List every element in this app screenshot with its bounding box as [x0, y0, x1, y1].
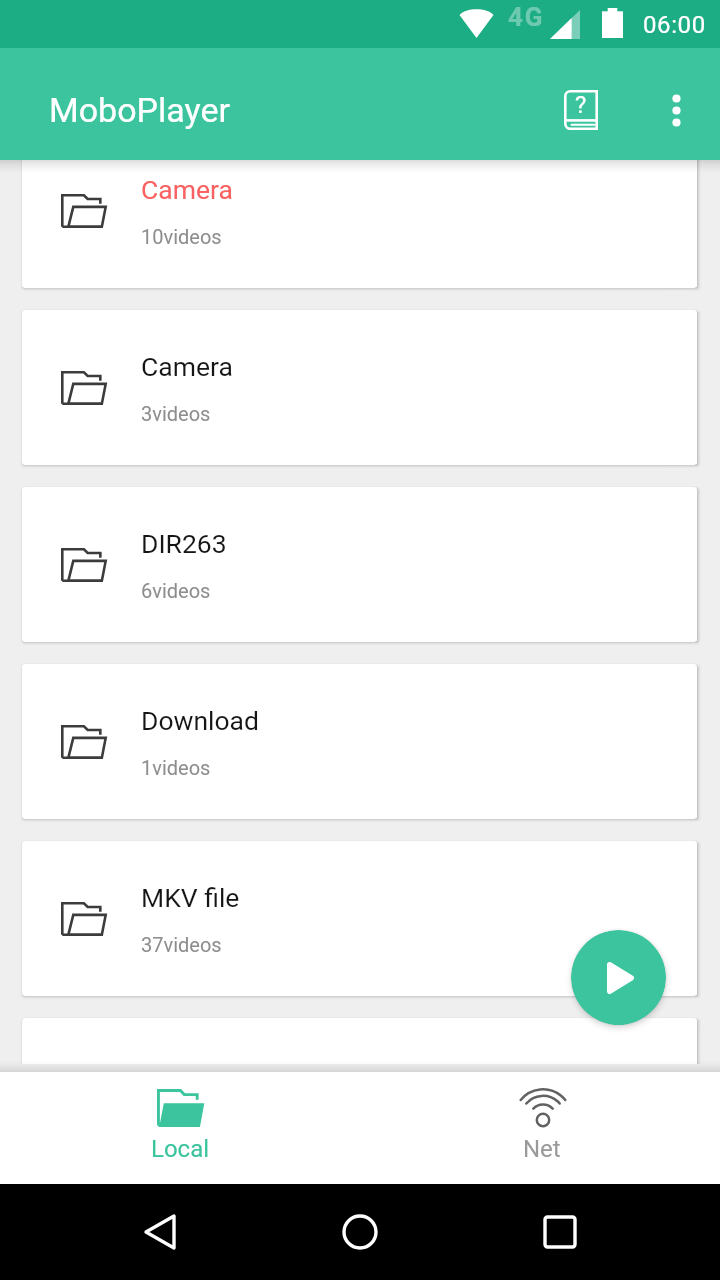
- button[interactable]: Home: [312, 1184, 408, 1280]
- button[interactable]: Camera: [22, 160, 697, 288]
- button[interactable]: DIR263: [22, 487, 697, 642]
- button[interactable]: Net: [452, 1072, 632, 1184]
- staticText: 4G: [508, 2, 545, 32]
- button[interactable]: Local: [90, 1072, 270, 1184]
- staticText: Download: [141, 705, 259, 736]
- button[interactable]: Download: [22, 664, 697, 819]
- button[interactable]: MKV file: [22, 841, 697, 996]
- button[interactable]: Play: [571, 930, 666, 1025]
- button[interactable]: Camera: [22, 310, 697, 465]
- staticText: 1videos: [141, 756, 211, 779]
- button[interactable]: Back: [112, 1184, 208, 1280]
- staticText: MoboPlayer: [49, 90, 230, 130]
- staticText: 3videos: [141, 402, 211, 425]
- staticText: 37videos: [141, 933, 222, 956]
- button[interactable]: Help: [533, 62, 629, 158]
- button[interactable]: More options: [628, 62, 720, 158]
- staticText: Net: [523, 1135, 561, 1163]
- staticText: Camera: [141, 351, 233, 382]
- button[interactable]: Recents: [512, 1184, 608, 1280]
- staticText: 6videos: [141, 579, 211, 602]
- staticText: Camera: [141, 174, 233, 205]
- staticText: 06:00: [643, 11, 706, 39]
- staticText: MKV file: [141, 882, 240, 913]
- staticText: 10videos: [141, 225, 222, 248]
- button[interactable]: Movies: [22, 1018, 697, 1064]
- staticText: Local: [151, 1135, 210, 1163]
- staticText: ?: [575, 91, 587, 119]
- staticText: DIR263: [141, 528, 227, 559]
